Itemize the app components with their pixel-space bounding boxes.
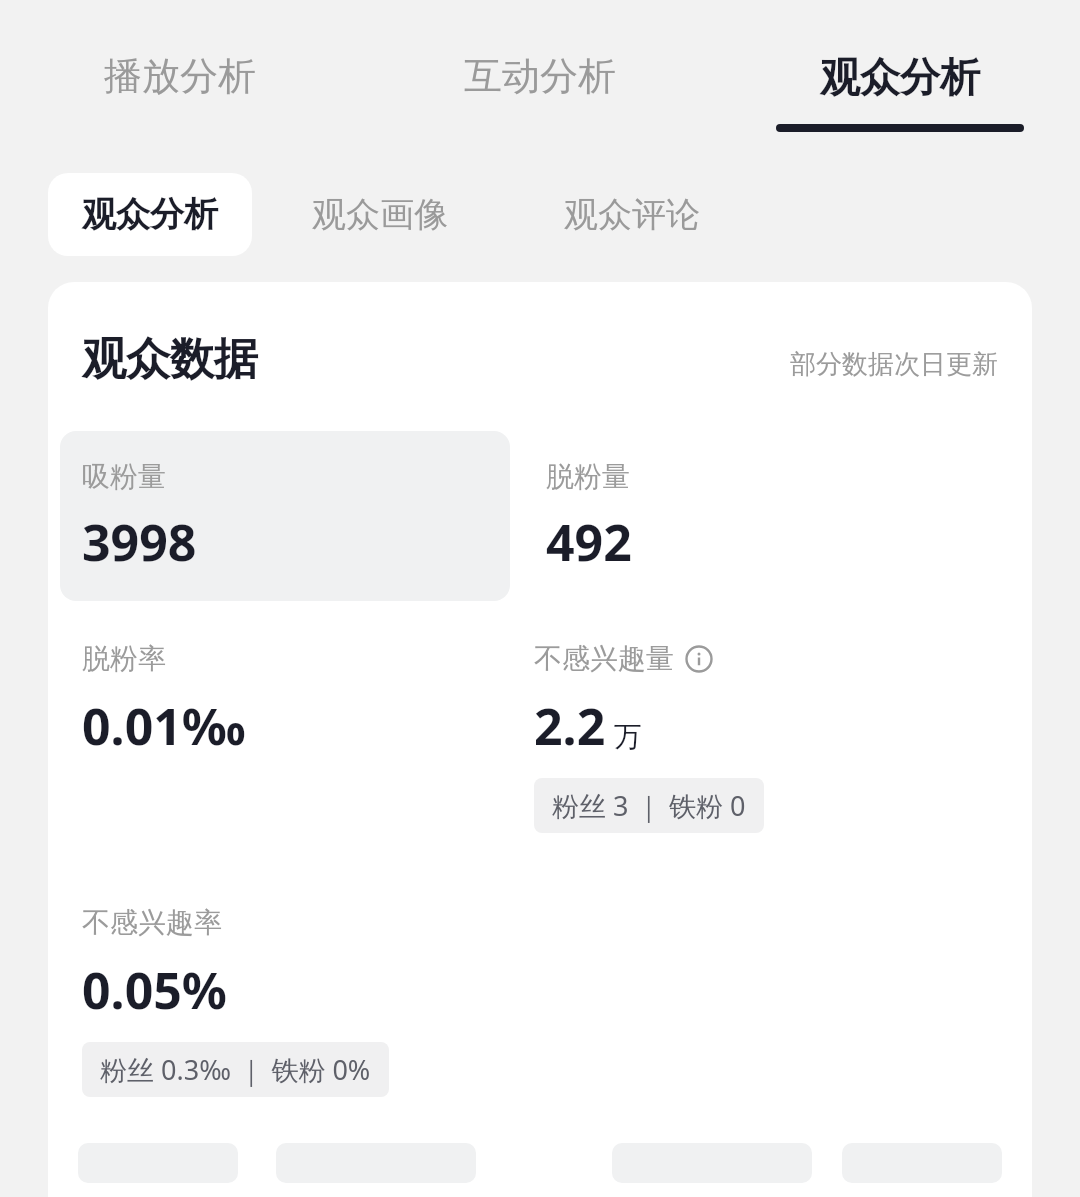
- staticText: 观众分析: [82, 193, 218, 236]
- staticText: 不感兴趣率: [82, 905, 222, 940]
- staticText: 0.05%: [82, 956, 227, 1024]
- staticText: 粉丝 0.3‰ ｜ 铁粉 0%: [100, 1051, 371, 1088]
- staticText: 粉丝 3 ｜ 铁粉 0: [552, 787, 746, 824]
- staticText: 万: [614, 719, 642, 754]
- staticText: 吸粉量: [82, 459, 166, 494]
- button[interactable]: 观众画像: [278, 173, 482, 256]
- staticText: 观众画像: [312, 193, 448, 236]
- staticText: 0.01‰: [82, 692, 246, 760]
- staticText: 互动分析: [464, 52, 616, 100]
- staticText: 观众分析: [820, 52, 980, 102]
- button[interactable]: 说明: [684, 644, 714, 674]
- button[interactable]: 观众分析: [720, 0, 1080, 132]
- button[interactable]: 粉丝 0.3‰ ｜ 铁粉 0%: [82, 1042, 389, 1097]
- staticText: 播放分析: [104, 52, 256, 100]
- button[interactable]: 播放分析: [0, 0, 360, 100]
- button[interactable]: 吸粉量: [60, 431, 510, 601]
- staticText: 3998: [82, 508, 197, 576]
- button[interactable]: 互动分析: [360, 0, 720, 100]
- staticText: 脱粉率: [82, 641, 166, 676]
- button[interactable]: 观众评论: [530, 173, 734, 256]
- staticText: 观众数据: [82, 332, 258, 387]
- staticText: 观众评论: [564, 193, 700, 236]
- staticText: 脱粉量: [546, 459, 630, 494]
- staticText: 部分数据次日更新: [790, 348, 998, 381]
- staticText: 不感兴趣量: [534, 641, 674, 676]
- button[interactable]: 粉丝 3 ｜ 铁粉 0: [534, 778, 764, 833]
- button[interactable]: 观众分析: [48, 173, 252, 256]
- staticText: 492: [546, 508, 632, 576]
- staticText: 2.2: [534, 692, 606, 760]
